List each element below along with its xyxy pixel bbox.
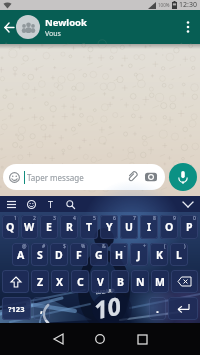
staticText: T bbox=[48, 198, 54, 210]
button[interactable] bbox=[38, 323, 78, 355]
button[interactable]: R bbox=[60, 215, 78, 239]
staticText: ) bbox=[184, 243, 186, 250]
button[interactable]: Newlook bbox=[45, 16, 87, 39]
staticText: K bbox=[156, 248, 163, 262]
button[interactable]: T bbox=[80, 215, 98, 239]
staticText: 8 bbox=[153, 215, 156, 222]
staticText: ( bbox=[164, 243, 166, 250]
staticText: Taper message bbox=[27, 172, 84, 183]
staticText: 5 bbox=[93, 215, 96, 222]
button[interactable]: F bbox=[70, 243, 88, 266]
staticText: Y bbox=[106, 220, 113, 234]
staticText: Z bbox=[37, 275, 44, 289]
button[interactable]: Q bbox=[2, 215, 19, 239]
staticText: O bbox=[165, 220, 174, 234]
staticText: Vous bbox=[45, 29, 61, 39]
staticText: 1 bbox=[14, 215, 17, 222]
staticText: 12:30 bbox=[179, 0, 197, 10]
staticText: J bbox=[137, 248, 141, 262]
staticText: Q bbox=[6, 220, 15, 234]
staticText: HAZARD bbox=[96, 287, 115, 295]
button[interactable]: X bbox=[51, 270, 69, 293]
staticText: 3 bbox=[53, 215, 56, 222]
button[interactable]: H bbox=[110, 243, 128, 266]
staticText: & bbox=[102, 243, 106, 250]
button[interactable]: D bbox=[50, 243, 68, 266]
button[interactable]: U bbox=[120, 215, 138, 239]
button[interactable] bbox=[3, 15, 16, 39]
button[interactable]: P bbox=[180, 215, 198, 239]
button[interactable] bbox=[24, 197, 38, 211]
staticText: 10 bbox=[91, 289, 124, 326]
staticText: L bbox=[176, 248, 182, 262]
staticText: 7 bbox=[133, 215, 136, 222]
button[interactable]: B bbox=[111, 270, 129, 293]
staticText: P bbox=[186, 220, 193, 234]
button[interactable]: C bbox=[71, 270, 89, 293]
button[interactable]: A bbox=[12, 243, 29, 266]
button[interactable]: K bbox=[150, 243, 168, 266]
staticText: F bbox=[76, 248, 82, 262]
staticText: % bbox=[81, 243, 86, 250]
staticText: 9 bbox=[173, 215, 176, 222]
button[interactable] bbox=[16, 15, 40, 39]
button[interactable]: Z bbox=[31, 270, 49, 293]
button[interactable]: O bbox=[160, 215, 178, 239]
staticText: I bbox=[147, 220, 152, 234]
staticText: W bbox=[24, 220, 35, 234]
staticText: T bbox=[86, 220, 93, 234]
button[interactable]: L bbox=[170, 243, 188, 266]
button[interactable]: W bbox=[21, 215, 38, 239]
staticText: V bbox=[97, 275, 104, 289]
button[interactable]: T bbox=[44, 197, 58, 211]
button[interactable] bbox=[178, 12, 198, 42]
staticText: + bbox=[143, 243, 146, 250]
button[interactable] bbox=[80, 323, 120, 355]
button[interactable] bbox=[2, 270, 29, 293]
button[interactable]: V bbox=[91, 270, 109, 293]
button[interactable]: G bbox=[90, 243, 108, 266]
staticText: E bbox=[46, 220, 52, 234]
button[interactable]: Y bbox=[100, 215, 118, 239]
staticText: D bbox=[55, 248, 63, 262]
staticText: B bbox=[117, 275, 124, 289]
button[interactable] bbox=[171, 270, 198, 293]
staticText: $ bbox=[63, 243, 66, 250]
button[interactable] bbox=[52, 297, 147, 320]
button[interactable]: Taper message bbox=[3, 164, 165, 190]
button[interactable]: S bbox=[31, 243, 48, 266]
button[interactable]: , bbox=[33, 297, 50, 320]
staticText: N bbox=[136, 275, 145, 289]
button[interactable]: . bbox=[149, 297, 166, 320]
button[interactable] bbox=[169, 163, 197, 191]
button[interactable] bbox=[122, 323, 162, 355]
staticText: 100% bbox=[158, 2, 170, 8]
button[interactable] bbox=[180, 196, 196, 212]
staticText: U bbox=[125, 220, 133, 234]
staticText: M bbox=[155, 275, 165, 289]
button[interactable] bbox=[168, 297, 198, 320]
staticText: . bbox=[156, 302, 159, 316]
button[interactable] bbox=[4, 197, 18, 211]
staticText: 0 bbox=[193, 215, 196, 222]
button[interactable]: N bbox=[131, 270, 149, 293]
staticText: , bbox=[40, 302, 43, 316]
staticText: G bbox=[95, 248, 103, 262]
staticText: A bbox=[17, 248, 25, 262]
button[interactable]: E bbox=[40, 215, 58, 239]
button[interactable]: J bbox=[130, 243, 148, 266]
button[interactable]: ?123 bbox=[2, 297, 31, 320]
staticText: 2 bbox=[33, 215, 36, 222]
staticText: # bbox=[42, 243, 46, 250]
button[interactable]: M bbox=[151, 270, 169, 293]
staticText: R bbox=[66, 220, 73, 234]
staticText: Newlook bbox=[45, 16, 87, 29]
staticText: X bbox=[56, 275, 64, 289]
staticText: @ bbox=[22, 243, 27, 250]
button[interactable] bbox=[63, 197, 77, 211]
button[interactable]: I bbox=[140, 215, 158, 239]
staticText: S bbox=[37, 248, 43, 262]
staticText: 4 bbox=[73, 215, 76, 222]
staticText: - bbox=[124, 243, 126, 250]
staticText: C bbox=[77, 275, 84, 289]
